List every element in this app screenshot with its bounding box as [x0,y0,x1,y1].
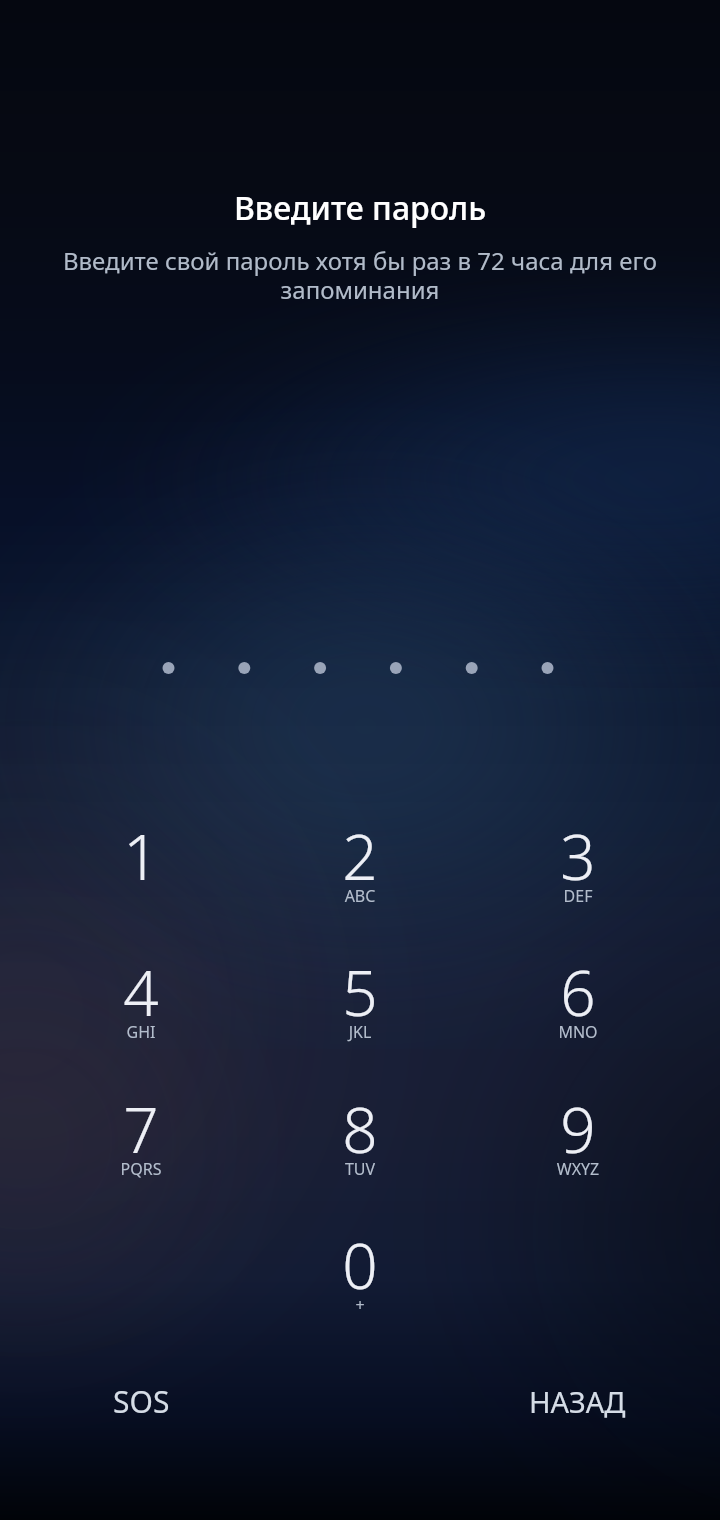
staticText: 5 [290,950,430,1034]
button[interactable]: 5 [290,950,430,1068]
staticText: DEF [508,885,648,907]
staticText: Введите пароль [0,186,720,230]
staticText: 7 [71,1087,211,1171]
staticText: TUV [290,1158,430,1180]
button[interactable]: 3 [508,814,648,932]
staticText: 8 [290,1087,430,1171]
staticText: WXYZ [508,1158,648,1180]
button[interactable]: SOS [71,1366,211,1436]
staticText: ABC [290,885,430,907]
staticText: 6 [508,950,648,1034]
staticText: Введите свой пароль хотя бы раз в 72 час… [52,244,668,306]
staticText: SOS [113,1381,170,1422]
staticText: + [290,1294,430,1316]
button[interactable]: НАЗАД [507,1366,647,1436]
button[interactable]: 9 [508,1087,648,1205]
staticText: 1 [71,814,211,898]
staticText: 0 [290,1223,430,1307]
staticText: JKL [290,1021,430,1043]
button[interactable]: 6 [508,950,648,1068]
button[interactable]: 0 [290,1223,430,1341]
button[interactable]: 4 [71,950,211,1068]
staticText: 9 [508,1087,648,1171]
button[interactable]: 1 [71,814,211,932]
staticText: MNO [508,1021,648,1043]
button[interactable]: 7 [71,1087,211,1205]
staticText: 3 [508,814,648,898]
staticText: НАЗАД [529,1382,626,1421]
button[interactable]: 8 [290,1087,430,1205]
staticText: GHI [71,1021,211,1043]
staticText: PQRS [71,1158,211,1180]
staticText: 4 [71,950,211,1034]
button[interactable]: 2 [290,814,430,932]
staticText: 2 [290,814,430,898]
